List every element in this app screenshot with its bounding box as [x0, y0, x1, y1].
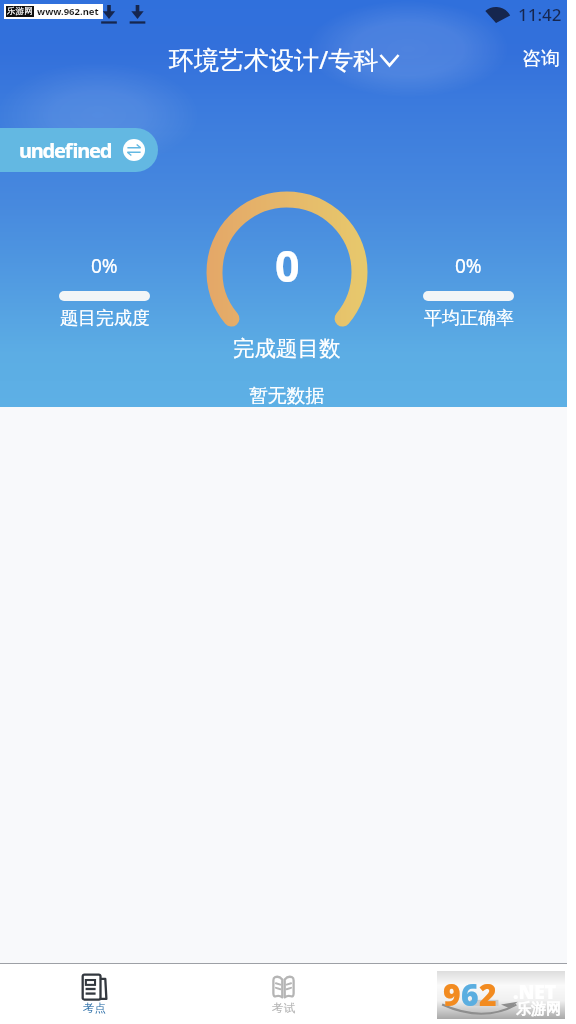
staticText: 2: [479, 974, 497, 1015]
staticText: 我的: [461, 1001, 484, 1015]
staticText: 完成题目数: [233, 335, 341, 362]
button[interactable]: undefined: [19, 128, 158, 172]
button[interactable]: 考试: [189, 964, 378, 1024]
staticText: 0: [275, 236, 300, 288]
button[interactable]: 考点: [0, 964, 189, 1024]
staticText: 咨询: [522, 47, 560, 71]
button[interactable]: 我的: [378, 964, 567, 1024]
staticText: 乐游网: [7, 6, 33, 17]
staticText: 环境艺术设计/专科: [169, 42, 379, 76]
staticText: www.962.net: [37, 5, 99, 18]
staticText: 考点: [83, 1001, 106, 1015]
staticText: undefined: [19, 137, 112, 164]
staticText: 11:42: [518, 3, 562, 26]
staticText: 0%: [455, 253, 482, 279]
staticText: 题目完成度: [60, 307, 150, 330]
button[interactable]: 环境艺术设计/专科: [169, 42, 399, 76]
staticText: 9: [443, 974, 461, 1015]
staticText: .NET: [513, 979, 556, 1005]
staticText: 乐游网: [516, 1000, 561, 1019]
staticText: 暂无数据: [249, 384, 325, 408]
button[interactable]: 咨询: [522, 47, 560, 71]
staticText: 6: [461, 974, 479, 1015]
staticText: 0%: [91, 253, 118, 279]
staticText: 考试: [272, 1001, 295, 1015]
staticText: 平均正确率: [424, 307, 514, 330]
